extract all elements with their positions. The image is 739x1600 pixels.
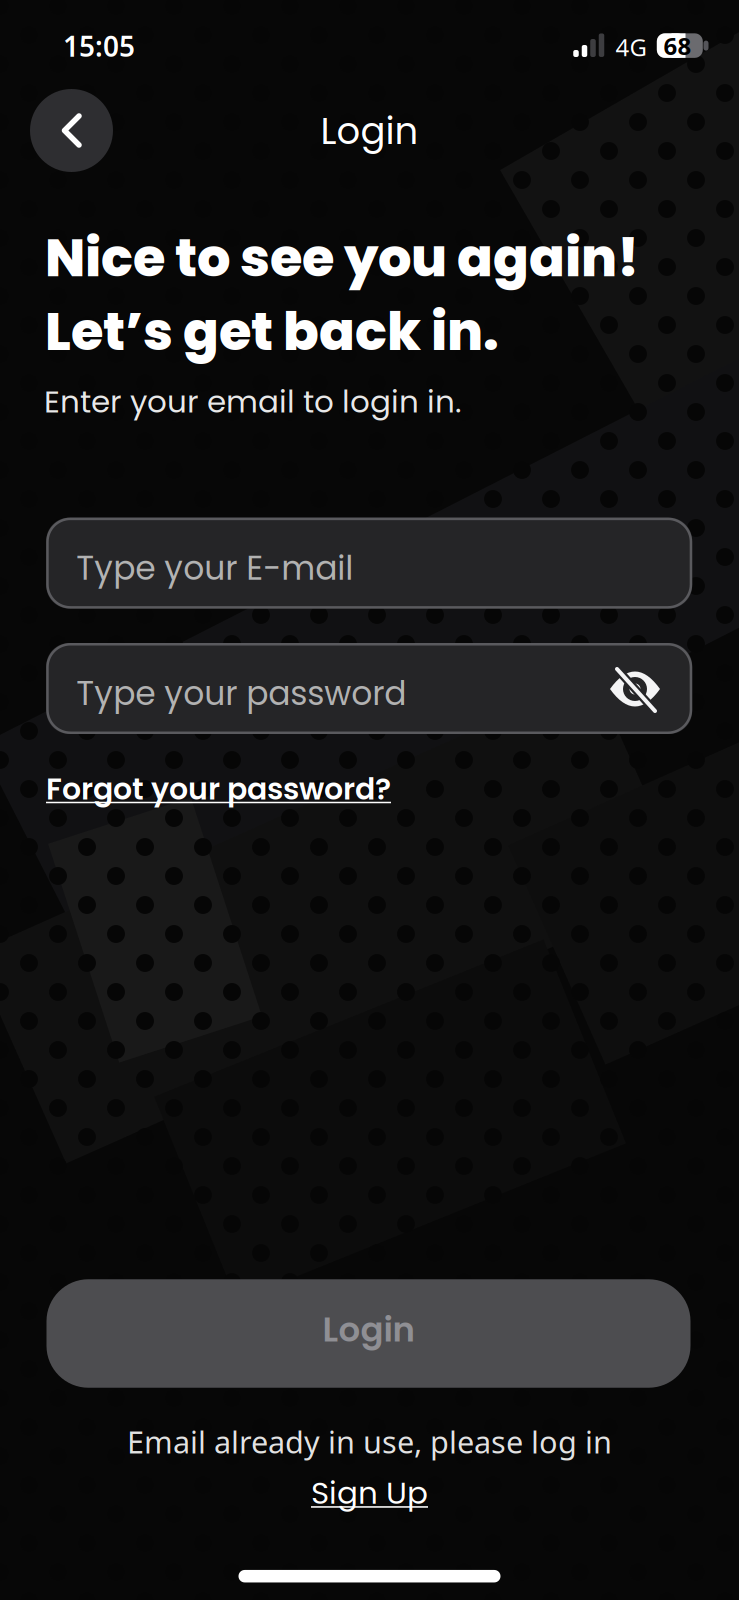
button[interactable]: Forgot your password? xyxy=(46,768,391,810)
button[interactable]: Login xyxy=(46,1279,690,1388)
staticText: Type your password xyxy=(76,670,406,717)
staticText: 15:05 xyxy=(63,27,135,65)
button[interactable]: Sign Up xyxy=(311,1471,428,1515)
staticText: Login xyxy=(322,1306,414,1353)
button[interactable] xyxy=(30,89,113,172)
staticText: 4G xyxy=(615,31,646,63)
button[interactable] xyxy=(603,656,667,720)
button[interactable]: Type your password xyxy=(46,643,692,734)
staticText: Login xyxy=(320,105,418,157)
staticText: Sign Up xyxy=(311,1471,428,1515)
staticText: Forgot your password? xyxy=(46,768,391,810)
staticText: Type your E-mail xyxy=(76,545,353,591)
staticText: Email already in use, please log in xyxy=(127,1421,612,1462)
staticText: Nice to see you again! Let’s get back in… xyxy=(45,221,639,368)
staticText: 68 xyxy=(663,30,691,62)
button[interactable]: Type your E-mail xyxy=(46,518,692,609)
staticText: Enter your email to login in. xyxy=(44,380,462,423)
